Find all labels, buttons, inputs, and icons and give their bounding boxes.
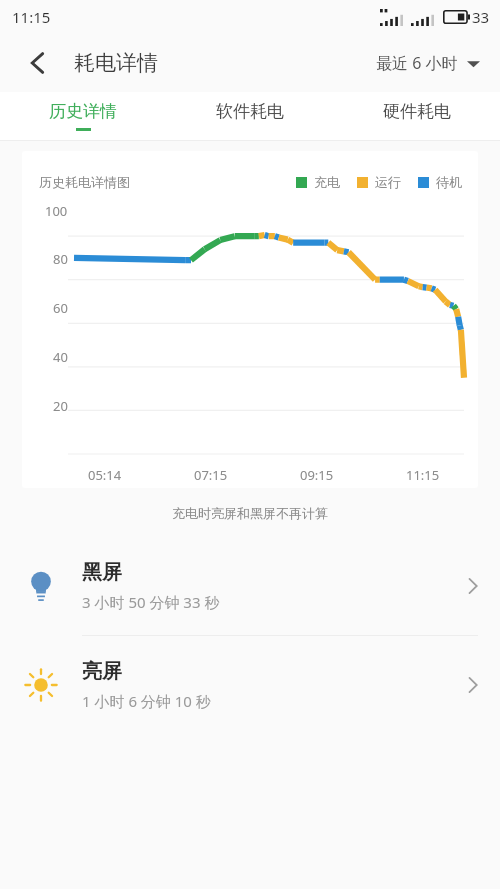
staticText: 最近 6 小时 — [376, 52, 458, 74]
staticText: 耗电详情 — [74, 50, 158, 76]
staticText: 历史详情 — [49, 101, 117, 122]
staticText: 3 小时 50 分钟 33 秒 — [82, 592, 220, 612]
button[interactable]: 软件耗电 — [166, 92, 333, 140]
staticText: 历史耗电详情图 — [39, 174, 130, 190]
button[interactable]: Back — [20, 45, 56, 81]
staticText: 60 — [53, 299, 68, 317]
staticText: 11:15 — [12, 7, 51, 27]
button[interactable]: 最近 6 小时 — [372, 46, 484, 80]
staticText: 硬件耗电 — [383, 101, 451, 122]
staticText: 充电时亮屏和黑屏不再计算 — [0, 505, 500, 521]
staticText: 40 — [53, 348, 68, 366]
staticText: 07:15 — [194, 466, 228, 484]
staticText: 充电 — [314, 174, 340, 190]
staticText: 09:15 — [300, 466, 334, 484]
staticText: 100 — [45, 202, 68, 220]
button[interactable]: 历史详情 — [0, 92, 166, 140]
button[interactable]: 黑屏 — [0, 537, 500, 635]
staticText: 80 — [53, 250, 68, 268]
staticText: 1 小时 6 分钟 10 秒 — [82, 691, 211, 711]
staticText: 待机 — [436, 174, 462, 190]
staticText: 运行 — [375, 174, 401, 190]
staticText: 05:14 — [88, 466, 122, 484]
staticText: 亮屏 — [82, 659, 122, 684]
button[interactable]: 硬件耗电 — [333, 92, 500, 140]
staticText: 黑屏 — [82, 560, 122, 585]
staticText: 20 — [53, 397, 68, 415]
staticText: 33 — [472, 7, 490, 27]
button[interactable]: 亮屏 — [0, 636, 500, 734]
staticText: 11:15 — [406, 466, 440, 484]
staticText: 软件耗电 — [216, 101, 284, 122]
